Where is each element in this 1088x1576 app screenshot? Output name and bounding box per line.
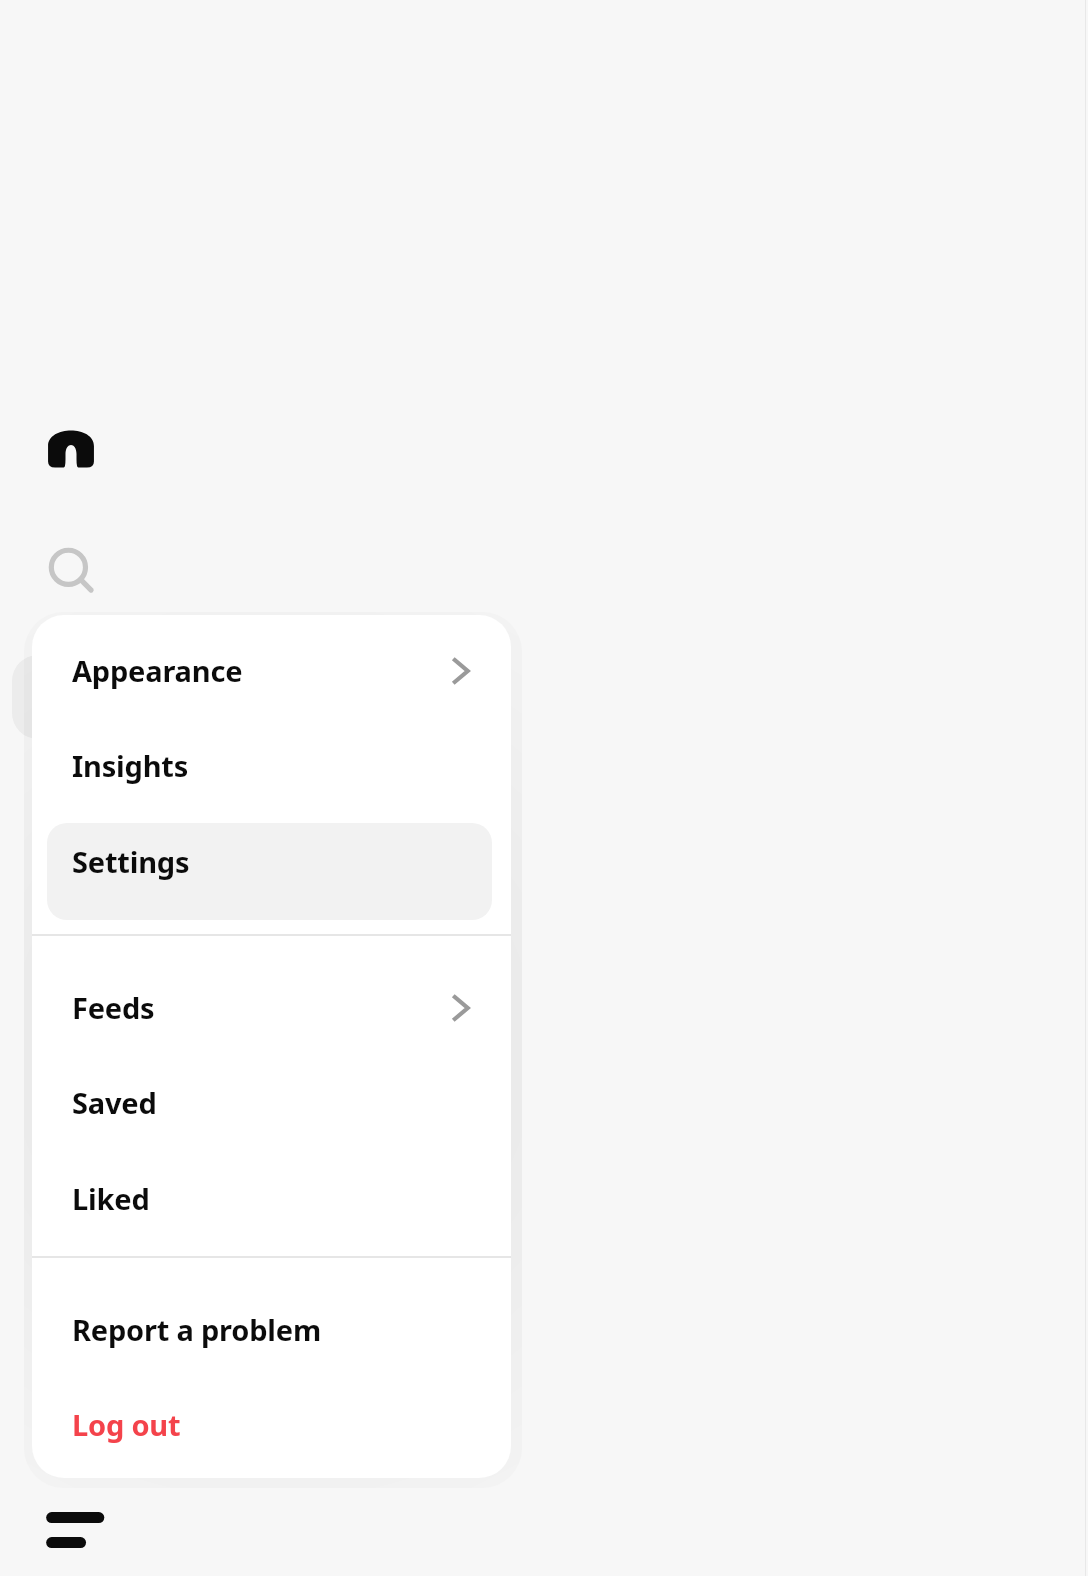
button[interactable]: Appearance [32, 626, 511, 715]
staticText: Report a problem [72, 1310, 475, 1349]
staticText: Log out [72, 1405, 475, 1444]
button[interactable]: Log out [32, 1380, 511, 1469]
staticText: Appearance [72, 651, 447, 690]
staticText: Feeds [72, 988, 447, 1027]
button[interactable]: Menu [38, 1494, 114, 1556]
staticText: Insights [72, 746, 475, 785]
button[interactable]: Search [42, 543, 102, 601]
button[interactable]: Home [40, 417, 102, 477]
staticText: Saved [72, 1083, 475, 1122]
button[interactable]: Settings [32, 817, 511, 906]
button[interactable]: Feeds [32, 963, 511, 1052]
staticText: Liked [72, 1179, 475, 1218]
button[interactable]: Liked [32, 1154, 511, 1243]
button[interactable]: Saved [32, 1058, 511, 1147]
staticText: Settings [72, 842, 475, 881]
button[interactable]: Insights [32, 721, 511, 810]
button[interactable]: Report a problem [32, 1285, 511, 1374]
